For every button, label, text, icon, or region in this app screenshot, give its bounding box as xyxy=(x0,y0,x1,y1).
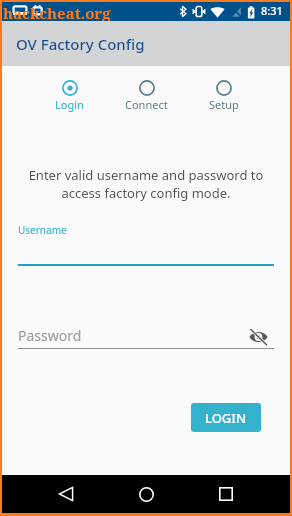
staticText: LOGIN xyxy=(205,409,247,427)
button[interactable]: Back xyxy=(49,477,83,511)
button[interactable]: Toggle password visibility xyxy=(246,325,270,349)
button[interactable]: Recent apps xyxy=(209,477,243,511)
button[interactable]: LOGIN xyxy=(191,403,261,432)
staticText: Enter valid username and password to acc… xyxy=(24,166,268,202)
staticText: Password xyxy=(18,326,82,345)
button[interactable]: Setup xyxy=(185,80,262,112)
staticText: 8:31 xyxy=(261,3,283,18)
button[interactable]: Home xyxy=(129,477,163,511)
staticText: OV Factory Config xyxy=(16,34,145,54)
staticText: Setup xyxy=(209,97,239,112)
staticText: hackcheat.org xyxy=(3,3,111,22)
staticText: Login xyxy=(55,97,84,112)
button[interactable]: Login xyxy=(31,80,108,112)
staticText: Username xyxy=(18,223,67,237)
staticText: Connect xyxy=(125,97,168,112)
button[interactable]: Connect xyxy=(108,80,185,112)
